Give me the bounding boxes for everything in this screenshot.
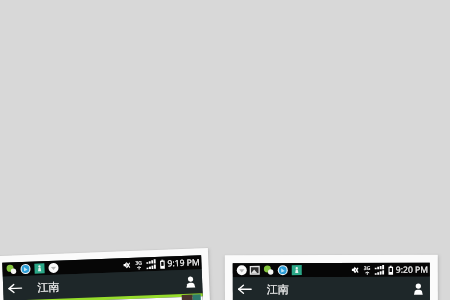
staticText: 3G: [135, 259, 142, 267]
button[interactable]: Back: [233, 277, 256, 300]
button[interactable]: 3G: [233, 263, 430, 300]
button[interactable]: 3G: [2, 255, 207, 300]
staticText: 江南: [267, 282, 289, 296]
staticText: 9:20 PM: [396, 264, 429, 276]
staticText: 江南: [37, 280, 59, 294]
button[interactable]: Profile: [409, 277, 427, 300]
button[interactable]: Back: [3, 276, 27, 300]
staticText: 9:19 PM: [167, 256, 201, 270]
staticText: 3G: [364, 265, 371, 272]
button[interactable]: Profile: [181, 269, 200, 294]
